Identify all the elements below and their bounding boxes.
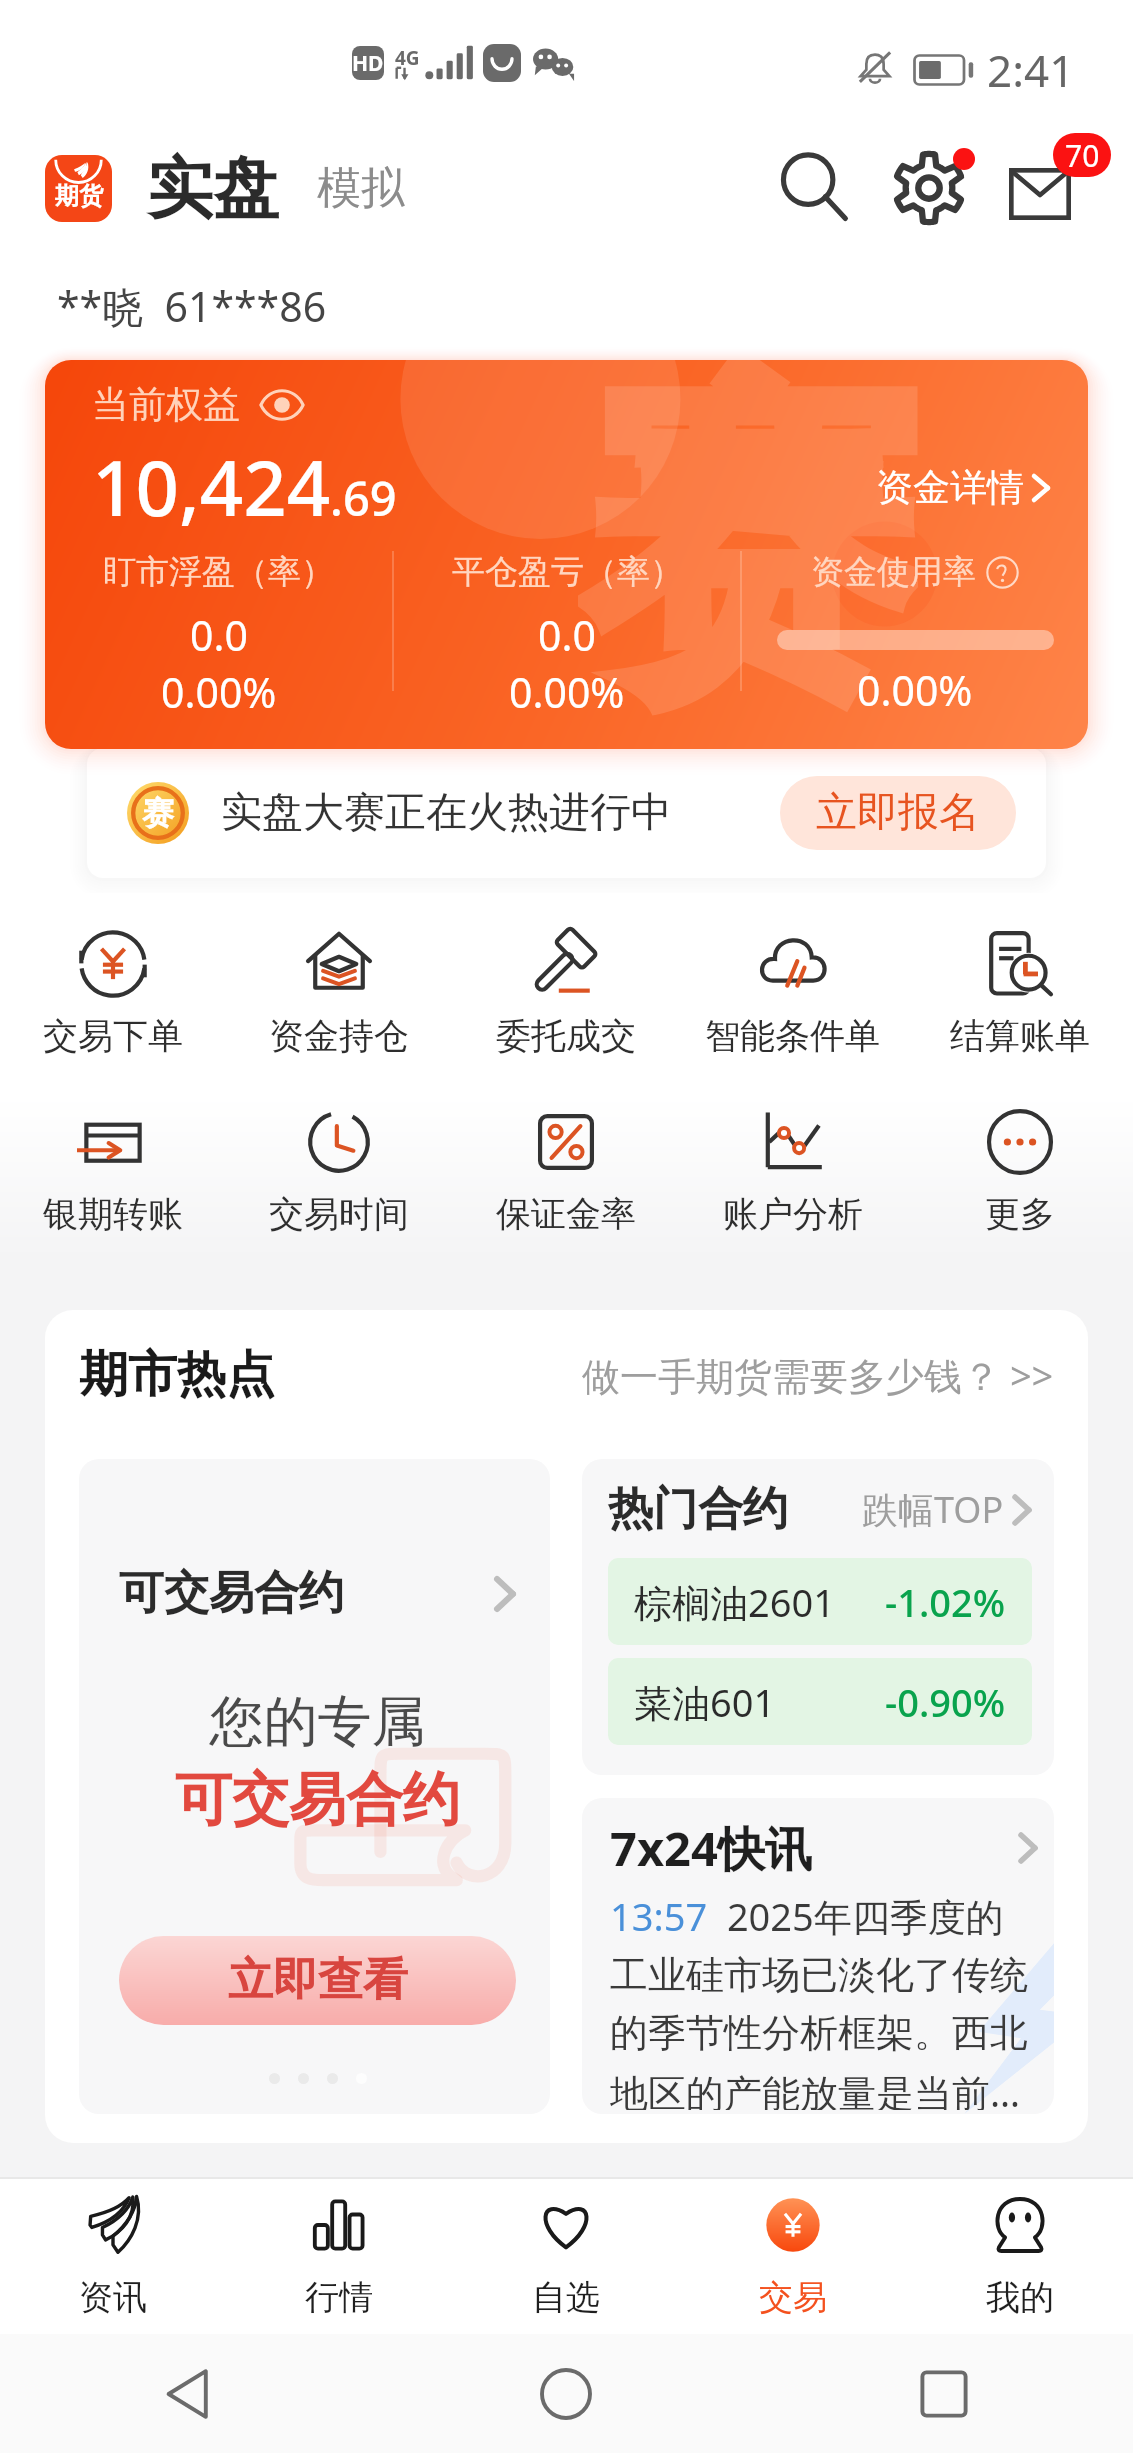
button[interactable]: 返回: [134, 2339, 244, 2449]
staticText: 盯市浮盈（率）: [103, 551, 334, 593]
button[interactable]: 棕榈油2601: [608, 1558, 1032, 1645]
button[interactable]: 交易: [679, 2179, 906, 2334]
staticText: -0.90%: [885, 1676, 1006, 1728]
button[interactable]: 设置: [881, 140, 977, 236]
staticText: HD: [352, 49, 384, 78]
staticText: 0.00%: [509, 664, 625, 720]
staticText: 您的专属: [119, 1688, 516, 1756]
staticText: 10,424.69: [92, 435, 397, 539]
staticText: 70: [1065, 135, 1100, 176]
button[interactable]: 交易下单: [0, 904, 226, 1082]
button[interactable]: 做一手期货需要多少钱？ >>: [582, 1349, 1054, 1401]
staticText: 我的: [986, 2276, 1054, 2319]
staticText: 资金详情: [876, 464, 1024, 511]
staticText: 交易下单: [43, 1014, 183, 1058]
button[interactable]: 行情: [226, 2179, 452, 2334]
button[interactable]: 交易时间: [226, 1082, 452, 1260]
button[interactable]: 资金详情: [876, 464, 1050, 511]
staticText: 13:57 2025年四季度的工业硅市场已淡化了传统的季节性分析框架。西北地区的…: [610, 1890, 1038, 2110]
staticText: 保证金率: [496, 1192, 636, 1236]
staticText: 资讯: [79, 2276, 147, 2319]
button[interactable]: 智能条件单: [679, 904, 906, 1082]
staticText: 跌幅TOP: [862, 1485, 1004, 1534]
button[interactable]: 立即报名: [780, 776, 1016, 850]
staticText: 账户分析: [723, 1192, 863, 1236]
button[interactable]: 最近任务: [889, 2339, 999, 2449]
staticText: 0.0: [190, 607, 248, 663]
staticText: 0.0: [538, 607, 596, 663]
staticText: 模拟: [317, 161, 405, 216]
staticText: 委托成交: [496, 1014, 636, 1058]
button[interactable]: 主页: [511, 2339, 621, 2449]
staticText: **晓 61***86: [57, 278, 327, 334]
staticText: 热门合约: [608, 1481, 788, 1538]
staticText: 2:41: [987, 40, 1075, 100]
staticText: 菜油601: [634, 1676, 776, 1728]
button[interactable]: 可交易合约: [79, 1459, 550, 2114]
button[interactable]: 菜油601: [608, 1658, 1032, 1745]
staticText: 0.00%: [857, 662, 973, 718]
button[interactable]: 7x24快讯: [582, 1798, 1054, 2114]
button[interactable]: 更多: [906, 1082, 1133, 1260]
staticText: 当前权益: [92, 381, 240, 428]
staticText: 交易时间: [269, 1192, 409, 1236]
staticText: 资金使用率: [811, 551, 976, 593]
staticText: 赛: [142, 793, 174, 833]
button[interactable]: 资讯: [0, 2179, 226, 2334]
staticText: 赛: [578, 360, 918, 719]
button[interactable]: 委托成交: [452, 904, 679, 1082]
staticText: 结算账单: [950, 1014, 1090, 1058]
staticText: 交易: [759, 2276, 827, 2319]
button[interactable]: 当前权益: [45, 378, 316, 431]
staticText: 智能条件单: [705, 1014, 880, 1058]
staticText: 0.00%: [161, 664, 277, 720]
staticText: 实盘: [147, 147, 279, 230]
button[interactable]: 保证金率: [452, 1082, 679, 1260]
button[interactable]: 我的: [906, 2179, 1133, 2334]
button[interactable]: 结算账单: [906, 904, 1133, 1082]
staticText: 实盘大赛正在火热进行中: [221, 787, 672, 839]
button[interactable]: 银期转账: [0, 1082, 226, 1260]
staticText: 平仓盈亏（率）: [452, 551, 683, 593]
staticText: 棕榈油2601: [634, 1576, 835, 1628]
staticText: 可交易合约: [119, 1565, 344, 1622]
staticText: -1.02%: [885, 1576, 1006, 1628]
staticText: 可交易合约: [119, 1764, 516, 1836]
staticText: 4G: [395, 45, 420, 71]
staticText: 自选: [532, 2276, 600, 2319]
staticText: 期市热点: [79, 1344, 275, 1406]
staticText: 7x24快讯: [610, 1816, 812, 1880]
button[interactable]: 立即查看: [119, 1936, 516, 2025]
button[interactable]: 自选: [452, 2179, 679, 2334]
staticText: 更多: [985, 1192, 1055, 1236]
staticText: 立即报名: [816, 787, 980, 839]
button[interactable]: 热门合约: [582, 1459, 1054, 1775]
staticText: 期货: [55, 181, 103, 211]
staticText: 立即查看: [228, 1952, 408, 2009]
button[interactable]: 搜索: [767, 140, 863, 236]
button[interactable]: 资金持仓: [226, 904, 452, 1082]
staticText: 做一手期货需要多少钱？ >>: [582, 1349, 1054, 1401]
staticText: 资金持仓: [269, 1014, 409, 1058]
button[interactable]: 账户分析: [679, 1082, 906, 1260]
staticText: 行情: [305, 2276, 373, 2319]
button[interactable]: 消息: [991, 133, 1101, 243]
button[interactable]: 赛: [87, 748, 1046, 878]
staticText: 银期转账: [43, 1192, 183, 1236]
